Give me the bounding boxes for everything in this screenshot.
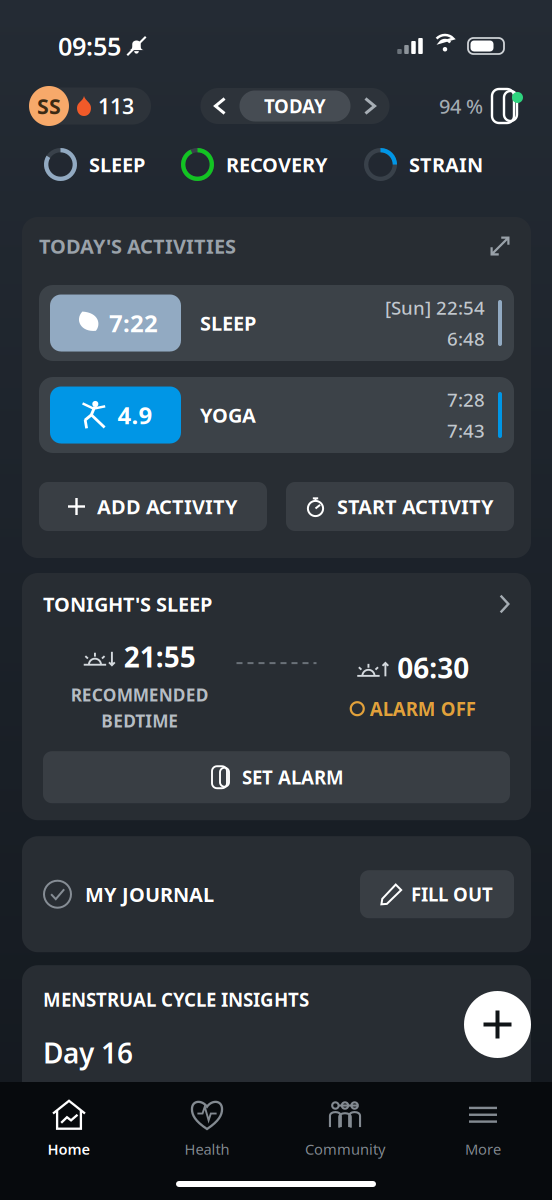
button[interactable]: More: [414, 1100, 552, 1158]
button[interactable]: 4.9: [39, 377, 514, 453]
staticText: SS: [37, 92, 61, 120]
button[interactable]: Health: [138, 1100, 276, 1158]
staticText: START ACTIVITY: [337, 493, 494, 520]
staticText: MY JOURNAL: [85, 881, 214, 907]
button[interactable]: 7:22: [39, 285, 514, 361]
staticText: STRAIN: [409, 151, 483, 178]
staticText: BEDTIME: [101, 709, 178, 732]
staticText: Community: [305, 1139, 385, 1159]
button[interactable]: Add: [464, 991, 531, 1058]
staticText: TODAY: [264, 94, 326, 118]
staticText: TODAY'S ACTIVITIES: [39, 233, 236, 259]
staticText: RECOMMENDED: [71, 683, 209, 706]
staticText: 94 %: [439, 93, 483, 119]
staticText: 113: [98, 92, 134, 120]
button[interactable]: FILL OUT: [360, 870, 514, 918]
button[interactable]: TONIGHT'S SLEEP: [43, 592, 510, 616]
button[interactable]: STRAIN: [364, 148, 483, 181]
staticText: 6:48: [447, 326, 485, 351]
staticText: 09:55: [58, 29, 121, 63]
button[interactable]: Previous day: [200, 88, 239, 124]
button[interactable]: START ACTIVITY: [286, 482, 514, 531]
staticText: [Sun] 22:54: [385, 295, 485, 320]
staticText: 7:28: [447, 387, 485, 412]
button[interactable]: Band battery 94 percent: [439, 88, 522, 124]
staticText: OVULATORY PHASE: [43, 1080, 219, 1105]
staticText: 7:22: [109, 307, 158, 339]
staticText: SLEEP: [89, 151, 145, 178]
button[interactable]: ADD ACTIVITY: [39, 482, 267, 531]
button[interactable]: SET ALARM: [43, 751, 510, 803]
staticText: YOGA: [200, 402, 256, 428]
button[interactable]: 113: [29, 86, 151, 126]
button[interactable]: RECOVERY: [181, 148, 328, 181]
staticText: Day 16: [43, 1034, 133, 1071]
button[interactable]: Home: [0, 1100, 138, 1158]
staticText: 4.9: [117, 399, 152, 431]
staticText: SLEEP: [200, 310, 256, 336]
staticText: Home: [47, 1139, 90, 1159]
staticText: RECOVERY: [226, 151, 328, 178]
button[interactable]: Community: [276, 1100, 414, 1158]
staticText: ALARM OFF: [370, 696, 476, 721]
button[interactable]: SLEEP: [44, 148, 145, 181]
staticText: 21:55: [124, 638, 196, 675]
staticText: MENSTRUAL CYCLE INSIGHTS: [43, 987, 309, 1012]
button[interactable]: Next day: [350, 88, 389, 124]
staticText: FILL OUT: [411, 882, 493, 907]
button[interactable]: TODAY: [239, 90, 350, 121]
staticText: 7:43: [447, 418, 485, 443]
button[interactable]: MY JOURNAL: [43, 880, 214, 909]
button[interactable]: Expand: [486, 234, 514, 258]
staticText: ADD ACTIVITY: [97, 493, 238, 520]
staticText: TONIGHT'S SLEEP: [43, 591, 212, 617]
staticText: SET ALARM: [242, 765, 344, 790]
staticText: More: [465, 1139, 501, 1159]
staticText: 06:30: [397, 649, 469, 686]
staticText: Health: [184, 1139, 229, 1159]
